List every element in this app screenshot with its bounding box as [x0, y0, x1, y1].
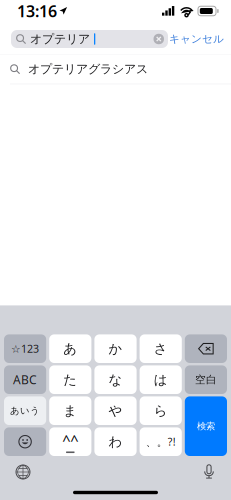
button[interactable]: ら — [140, 396, 182, 425]
button[interactable]: ☆123 — [4, 334, 46, 363]
button[interactable]: Kaomoji — [49, 427, 91, 456]
button[interactable]: オプテリアグラシアス — [0, 55, 231, 84]
staticText: あいう — [10, 405, 40, 416]
staticText: ま — [63, 402, 77, 419]
staticText: 13:16 — [17, 0, 57, 22]
button[interactable]: ま — [49, 396, 91, 425]
staticText: オプテリアグラシアス — [28, 62, 148, 76]
button[interactable]: あいう — [4, 396, 46, 425]
button[interactable]: Emoji — [4, 427, 46, 456]
button[interactable]: あ — [49, 334, 91, 363]
staticText: や — [108, 402, 122, 419]
button[interactable]: ABC — [4, 365, 46, 394]
staticText: ^^ — [62, 430, 78, 450]
staticText: あ — [63, 340, 77, 357]
button[interactable]: キャンセル — [168, 30, 225, 48]
staticText: 空白 — [195, 373, 217, 386]
button[interactable]: や — [94, 396, 137, 425]
button[interactable]: わ — [94, 427, 137, 456]
button[interactable]: た — [49, 365, 91, 394]
button[interactable]: は — [140, 365, 182, 394]
button[interactable]: な — [94, 365, 137, 394]
staticText: わ — [108, 433, 122, 450]
staticText: 、。?! — [146, 435, 176, 449]
staticText: 検索 — [197, 420, 215, 432]
button[interactable]: オプテリア — [11, 30, 168, 48]
button[interactable]: Dictation — [198, 459, 220, 485]
staticText: キャンセル — [169, 32, 224, 45]
button[interactable]: Next keyboard — [9, 459, 37, 485]
button[interactable]: さ — [140, 334, 182, 363]
staticText: ABC — [13, 372, 37, 388]
staticText: か — [108, 340, 122, 357]
staticText: は — [154, 371, 168, 388]
staticText: ら — [154, 402, 168, 419]
button[interactable]: 空白 — [185, 365, 227, 394]
staticText: ☆123 — [11, 342, 39, 356]
staticText: な — [108, 371, 122, 388]
button[interactable]: Delete — [185, 334, 227, 363]
staticText: た — [63, 371, 77, 388]
staticText: オプテリア — [30, 32, 90, 46]
button[interactable]: 検索 — [185, 396, 227, 456]
button[interactable]: 、。?! — [140, 427, 182, 456]
staticText: さ — [154, 340, 168, 357]
button[interactable]: か — [94, 334, 137, 363]
